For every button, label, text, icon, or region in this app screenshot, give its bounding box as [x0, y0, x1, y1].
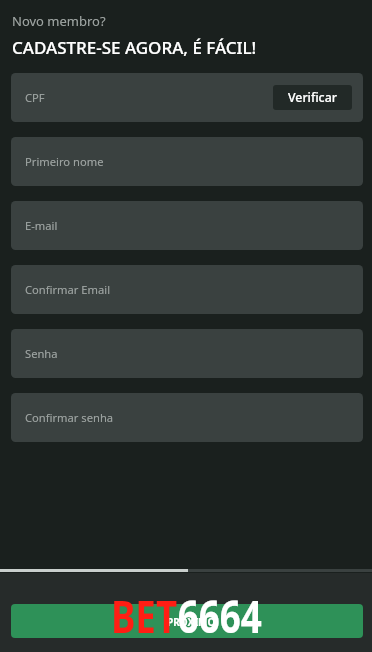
- staticText: 6664: [178, 586, 262, 646]
- button[interactable]: CPF: [11, 73, 363, 122]
- staticText: Confirmar senha: [25, 410, 114, 425]
- staticText: Senha: [25, 346, 58, 361]
- staticText: E-mail: [25, 218, 58, 233]
- staticText: Novo membro?: [12, 12, 106, 30]
- button[interactable]: Confirmar Email: [11, 265, 363, 314]
- button[interactable]: Senha: [11, 329, 363, 378]
- staticText: PRÓXIMO: [167, 615, 216, 629]
- button[interactable]: E-mail: [11, 201, 363, 250]
- staticText: CADASTRE-SE AGORA, É FÁCIL!: [12, 36, 257, 59]
- staticText: CPF: [25, 90, 45, 105]
- button[interactable]: Primeiro nome: [11, 137, 363, 186]
- button[interactable]: Confirmar senha: [11, 393, 363, 442]
- staticText: BET: [111, 586, 178, 646]
- other: BET6664 watermark: [111, 586, 262, 646]
- button[interactable]: Verificar: [273, 85, 352, 110]
- staticText: Verificar: [288, 89, 337, 106]
- staticText: Confirmar Email: [25, 282, 111, 297]
- staticText: Primeiro nome: [25, 154, 104, 169]
- button[interactable]: PRÓXIMO: [11, 604, 363, 638]
